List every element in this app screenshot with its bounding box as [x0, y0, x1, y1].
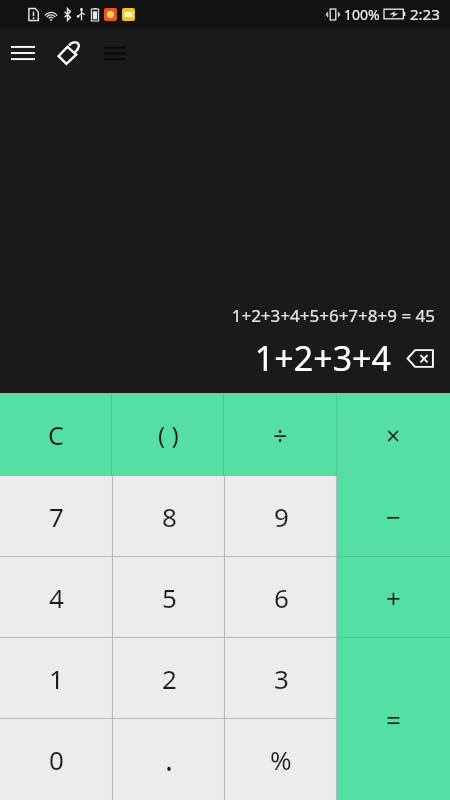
button[interactable]: ( ): [112, 393, 224, 476]
button[interactable]: Theme: [46, 30, 92, 76]
staticText: 4: [49, 580, 64, 615]
button[interactable]: 0: [0, 719, 113, 800]
button[interactable]: Menu: [0, 30, 46, 76]
staticText: 1: [49, 661, 64, 696]
button[interactable]: 7: [0, 476, 113, 557]
button[interactable]: ×: [337, 393, 450, 476]
button[interactable]: 5: [113, 557, 225, 638]
staticText: ÷: [273, 418, 288, 452]
staticText: ( ): [158, 418, 179, 451]
button[interactable]: 4: [0, 557, 113, 638]
button[interactable]: 6: [225, 557, 337, 638]
button[interactable]: Backspace: [405, 345, 435, 371]
button[interactable]: 8: [113, 476, 225, 557]
button[interactable]: −: [337, 476, 450, 557]
button[interactable]: C: [0, 393, 112, 476]
staticText: −: [386, 499, 401, 534]
button[interactable]: More options: [92, 30, 138, 76]
staticText: 5: [162, 580, 177, 615]
staticText: 100%: [344, 5, 380, 24]
button[interactable]: %: [225, 719, 337, 800]
staticText: 3: [274, 661, 289, 696]
button[interactable]: =: [337, 638, 450, 800]
button[interactable]: .: [113, 719, 225, 800]
staticText: 2:23: [410, 4, 440, 24]
staticText: 2: [162, 661, 177, 696]
staticText: +: [386, 580, 401, 615]
staticText: 0: [49, 742, 64, 777]
staticText: ×: [386, 418, 401, 452]
staticText: 9: [274, 499, 289, 534]
staticText: =: [386, 702, 401, 737]
button[interactable]: 3: [225, 638, 337, 719]
staticText: 7: [49, 499, 64, 534]
button[interactable]: 9: [225, 476, 337, 557]
staticText: 6: [274, 580, 289, 615]
button[interactable]: ÷: [224, 393, 337, 476]
staticText: C: [48, 418, 64, 452]
staticText: 8: [162, 499, 177, 534]
button[interactable]: 1: [0, 638, 113, 719]
staticText: %: [270, 742, 292, 777]
staticText: 1+2+3+4: [254, 335, 391, 381]
staticText: 1+2+3+4+5+6+7+8+9 = 45: [231, 304, 435, 327]
button[interactable]: 2: [113, 638, 225, 719]
staticText: .: [165, 739, 174, 780]
button[interactable]: +: [337, 557, 450, 638]
